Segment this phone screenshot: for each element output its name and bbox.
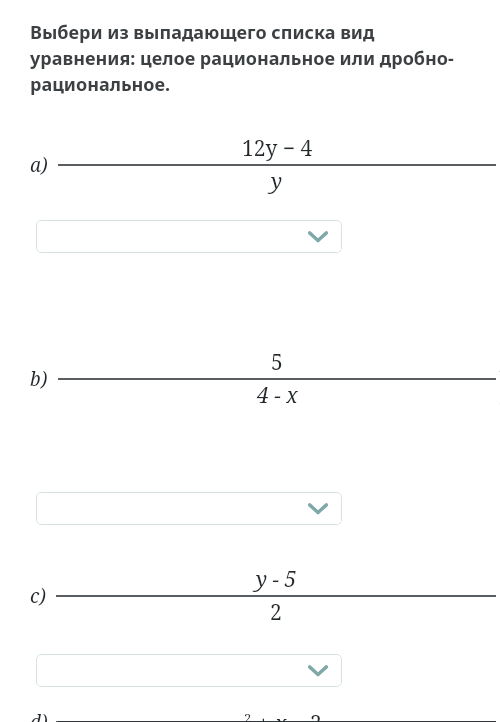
- staticText: d): [30, 709, 48, 722]
- staticText: 2: [244, 709, 252, 722]
- staticText: x: [275, 709, 287, 722]
- staticText: 2: [270, 598, 282, 627]
- staticText: x: [232, 715, 244, 722]
- staticText: a): [30, 152, 48, 178]
- button[interactable]: Выбери вид уравнения a: [36, 220, 342, 253]
- staticText: c): [30, 583, 46, 609]
- button[interactable]: Выбери вид уравнения b: [36, 492, 342, 525]
- staticText: b): [30, 366, 48, 392]
- staticText: y: [271, 167, 283, 196]
- staticText: 4 − x: [257, 381, 298, 410]
- staticText: +: [252, 709, 275, 722]
- staticText: Выбери из выпадающего списка вид уравнен…: [30, 20, 474, 97]
- staticText: y − 5: [256, 565, 297, 594]
- button[interactable]: Выбери вид уравнения c: [36, 654, 342, 687]
- staticText: 12y − 4: [242, 134, 313, 163]
- staticText: − 2: [287, 709, 322, 722]
- staticText: 5: [271, 348, 283, 377]
